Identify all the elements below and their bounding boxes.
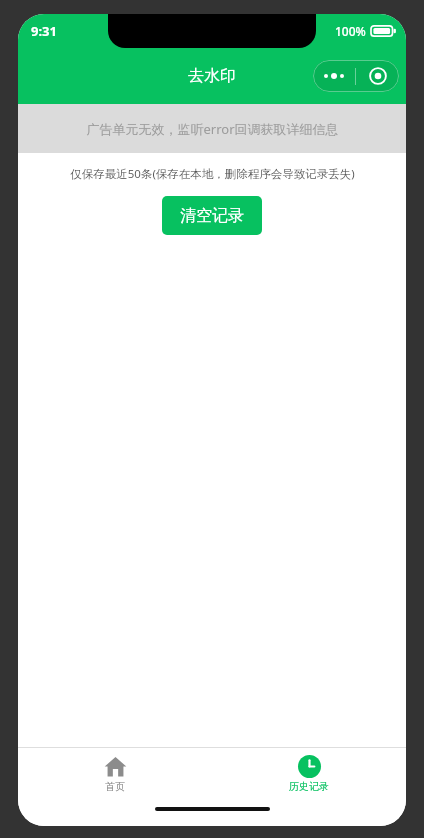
staticText: 100% — [335, 23, 366, 39]
staticText: 去水印 — [188, 66, 236, 86]
button[interactable]: 广告单元无效，监听error回调获取详细信息 — [18, 104, 406, 153]
staticText: 清空记录 — [180, 206, 244, 226]
staticText: 仅保存最近50条(保存在本地，删除程序会导致记录丢失) — [70, 166, 355, 182]
staticText: 历史记录 — [289, 780, 329, 793]
button[interactable]: Close mini program — [356, 60, 399, 92]
button[interactable]: 清空记录 — [162, 196, 262, 235]
button[interactable]: More options — [313, 60, 355, 92]
staticText: 广告单元无效，监听error回调获取详细信息 — [86, 120, 339, 138]
staticText: 9:31 — [31, 22, 57, 40]
button[interactable]: 历史记录 — [212, 748, 406, 800]
button[interactable]: 首页 — [18, 748, 212, 800]
staticText: 首页 — [105, 780, 125, 793]
